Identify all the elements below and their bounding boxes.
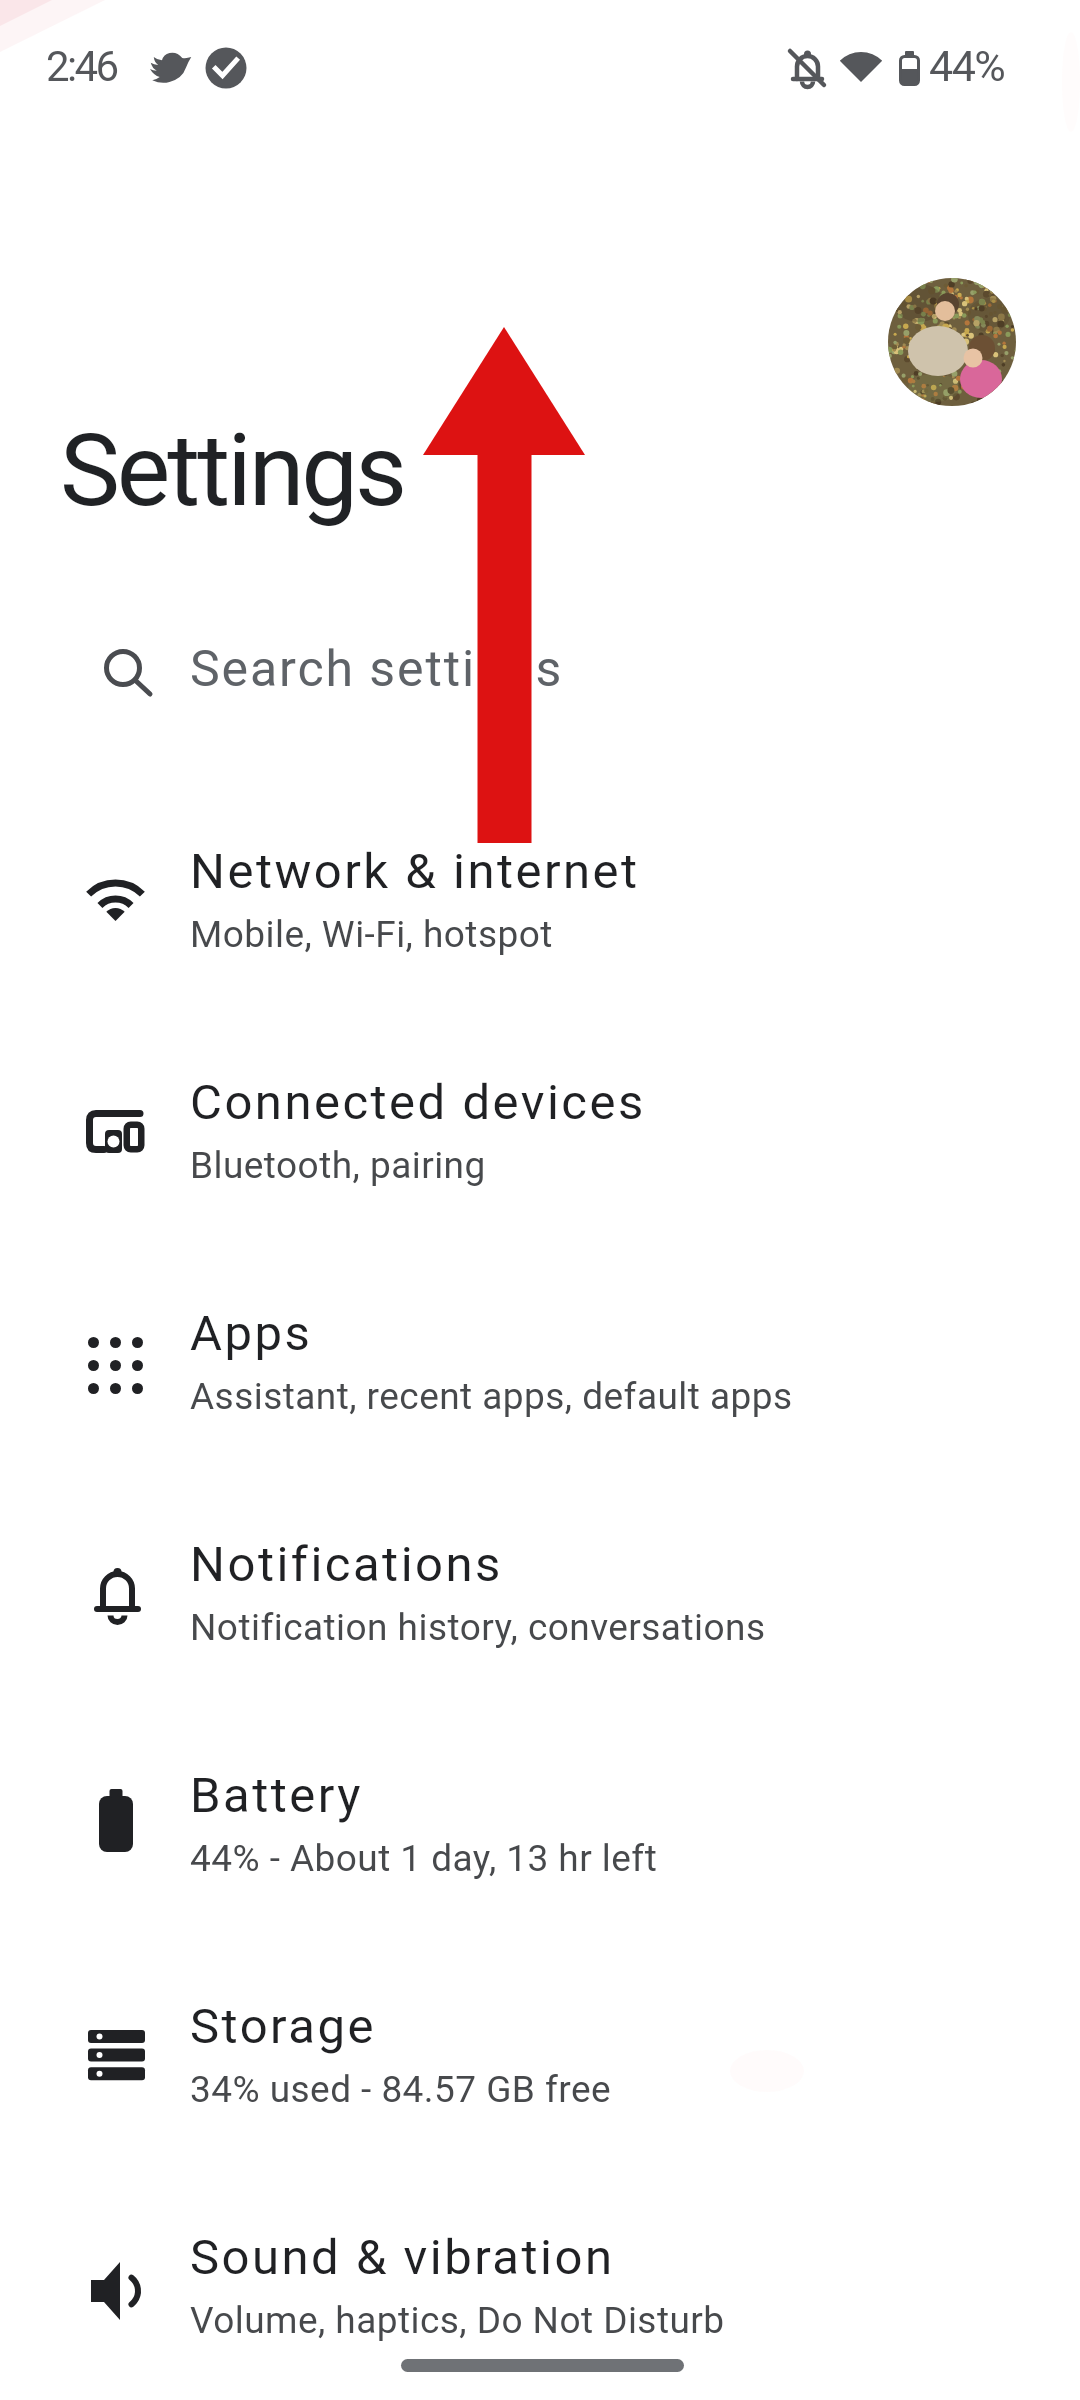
button[interactable]: Network & internet [0, 824, 1080, 1055]
staticText: 44% [929, 41, 1005, 91]
staticText: 2:46 [46, 42, 117, 91]
staticText: 34% used - 84.57 GB free [190, 2068, 612, 2111]
staticText: Mobile, Wi-Fi, hotspot [190, 913, 553, 956]
button[interactable] [888, 278, 1016, 406]
button[interactable]: Notifications [0, 1517, 1080, 1748]
staticText: Notifications [190, 1536, 503, 1593]
button[interactable]: Search settings [0, 612, 1080, 730]
button[interactable]: Sound & vibration [0, 2210, 1080, 2400]
staticText: Apps [190, 1305, 313, 1362]
staticText: Settings [60, 411, 404, 529]
staticText: Storage [190, 1998, 376, 2055]
staticText: Volume, haptics, Do Not Disturb [190, 2299, 725, 2342]
button[interactable]: Apps [0, 1286, 1080, 1517]
staticText: Sound & vibration [190, 2229, 615, 2286]
staticText: Assistant, recent apps, default apps [190, 1375, 793, 1418]
staticText: Bluetooth, pairing [190, 1144, 486, 1187]
staticText: Search settings [190, 640, 564, 699]
staticText: Network & internet [190, 843, 640, 900]
button[interactable]: Battery [0, 1748, 1080, 1979]
button[interactable]: Connected devices [0, 1055, 1080, 1286]
staticText: 44% - About 1 day, 13 hr left [190, 1837, 658, 1880]
staticText: Battery [190, 1767, 363, 1824]
button[interactable]: Storage [0, 1979, 1080, 2210]
staticText: Connected devices [190, 1074, 646, 1131]
staticText: Notification history, conversations [190, 1606, 766, 1649]
